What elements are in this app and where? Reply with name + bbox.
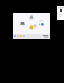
button[interactable]: Launcher item <box>14 35 16 37</box>
button[interactable]: Launcher item <box>20 35 22 37</box>
button[interactable]: Dialog window <box>38 19 46 27</box>
button[interactable]: Status area <box>42 35 49 38</box>
button[interactable]: Launcher item <box>13 34 50 39</box>
button[interactable]: Launcher item <box>23 35 25 37</box>
button[interactable]: Settings <box>29 15 34 20</box>
button[interactable]: Notes <box>29 25 34 30</box>
button[interactable]: Files <box>20 21 25 26</box>
button[interactable] <box>57 6 64 20</box>
button[interactable]: App <box>33 24 37 28</box>
